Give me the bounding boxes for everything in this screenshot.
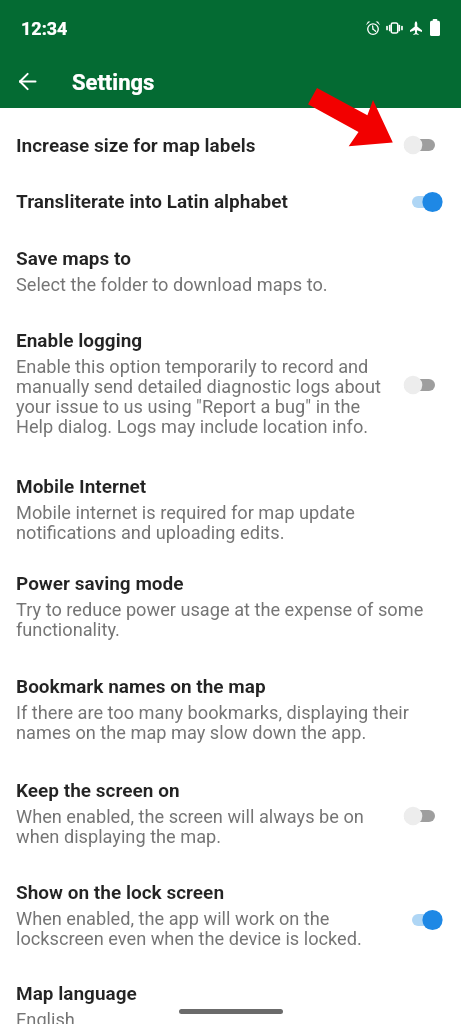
staticText: When enabled, the screen will always be … — [16, 807, 393, 847]
button[interactable]: Switch off — [400, 365, 448, 405]
staticText: Enable this option temporarily to record… — [16, 357, 393, 437]
staticText: Save maps to — [16, 247, 131, 270]
button[interactable]: Save maps to — [0, 213, 461, 295]
staticText: Mobile Internet — [16, 475, 147, 498]
staticText: Mobile internet is required for map upda… — [16, 503, 436, 543]
button[interactable]: Power saving mode — [0, 543, 461, 640]
button[interactable]: Switch on — [400, 182, 448, 222]
button[interactable]: Back — [9, 63, 45, 99]
staticText: Show on the lock screen — [16, 881, 225, 904]
staticText: 12:34 — [21, 18, 68, 39]
staticText: Bookmark names on the map — [16, 675, 266, 698]
staticText: Settings — [72, 70, 155, 96]
staticText: Try to reduce power usage at the expense… — [16, 600, 436, 640]
button[interactable]: Switch on — [400, 900, 448, 940]
staticText: English — [16, 1010, 75, 1024]
staticText: If there are too many bookmarks, display… — [16, 703, 436, 743]
staticText: Map language — [16, 982, 137, 1005]
button[interactable]: Show on the lock screen — [0, 847, 461, 949]
staticText: Power saving mode — [16, 572, 184, 595]
staticText: Increase size for map labels — [16, 134, 256, 157]
button[interactable]: Enable logging — [0, 295, 461, 437]
button[interactable]: Transliterate into Latin alphabet — [0, 157, 461, 213]
button[interactable]: Increase size for map labels — [0, 108, 461, 157]
staticText: Keep the screen on — [16, 779, 180, 802]
staticText: Transliterate into Latin alphabet — [16, 190, 288, 213]
staticText: When enabled, the app will work on the l… — [16, 909, 393, 949]
button[interactable]: Mobile Internet — [0, 437, 461, 543]
button[interactable]: Keep the screen on — [0, 743, 461, 847]
button[interactable]: Switch off — [400, 125, 448, 165]
staticText: Enable logging — [16, 329, 143, 352]
staticText: Select the folder to download maps to. — [16, 275, 328, 295]
button[interactable]: Map language — [0, 949, 461, 1024]
button[interactable]: Switch off — [400, 796, 448, 836]
button[interactable]: Bookmark names on the map — [0, 640, 461, 743]
